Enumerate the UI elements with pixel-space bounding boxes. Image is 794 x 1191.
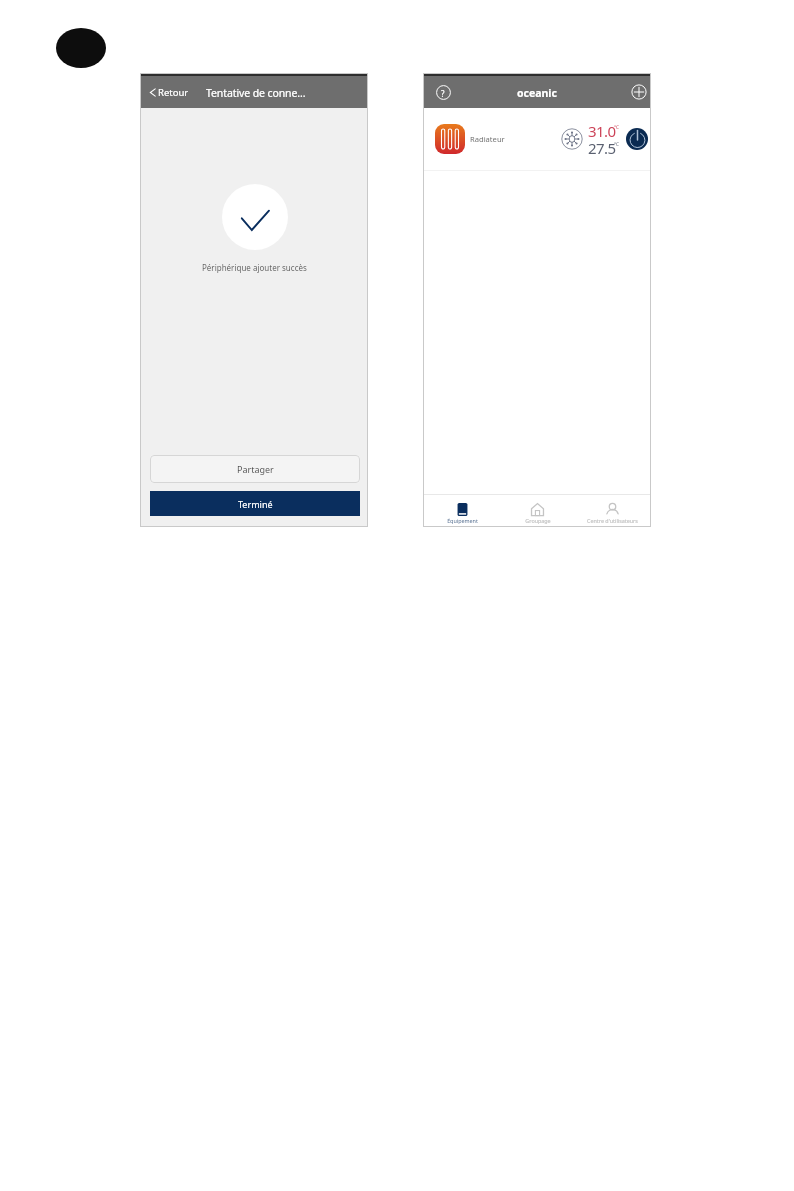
staticText: ?	[441, 88, 445, 99]
staticText: 31.0	[588, 121, 616, 141]
button[interactable]: Power	[626, 128, 648, 150]
staticText: Périphérique ajouter succès	[202, 262, 307, 273]
button[interactable]: Équipement	[424, 495, 500, 526]
button[interactable]: Terminé	[150, 491, 360, 516]
staticText: Équipement	[447, 517, 478, 524]
button[interactable]: Radiateur	[424, 108, 650, 170]
staticText: Partager	[237, 463, 274, 475]
button[interactable]: Centre d'utilisateurs	[575, 495, 650, 526]
staticText: ℃	[614, 124, 619, 131]
staticText: ℃	[614, 141, 619, 148]
staticText: Tentative de conne...	[206, 86, 306, 100]
button[interactable]: Partager	[150, 455, 360, 483]
staticText: Radiateur	[470, 134, 505, 144]
staticText: Centre d'utilisateurs	[587, 517, 638, 524]
staticText: Groupage	[525, 517, 551, 524]
button[interactable]: Help	[433, 82, 453, 102]
button[interactable]: Groupage	[500, 495, 575, 526]
button[interactable]: Retour	[141, 81, 194, 104]
button[interactable]: Add device	[629, 82, 649, 102]
staticText: Terminé	[238, 498, 273, 510]
staticText: Retour	[158, 86, 189, 99]
staticText: 27.5	[588, 138, 616, 158]
staticText: oceanic	[517, 86, 557, 100]
